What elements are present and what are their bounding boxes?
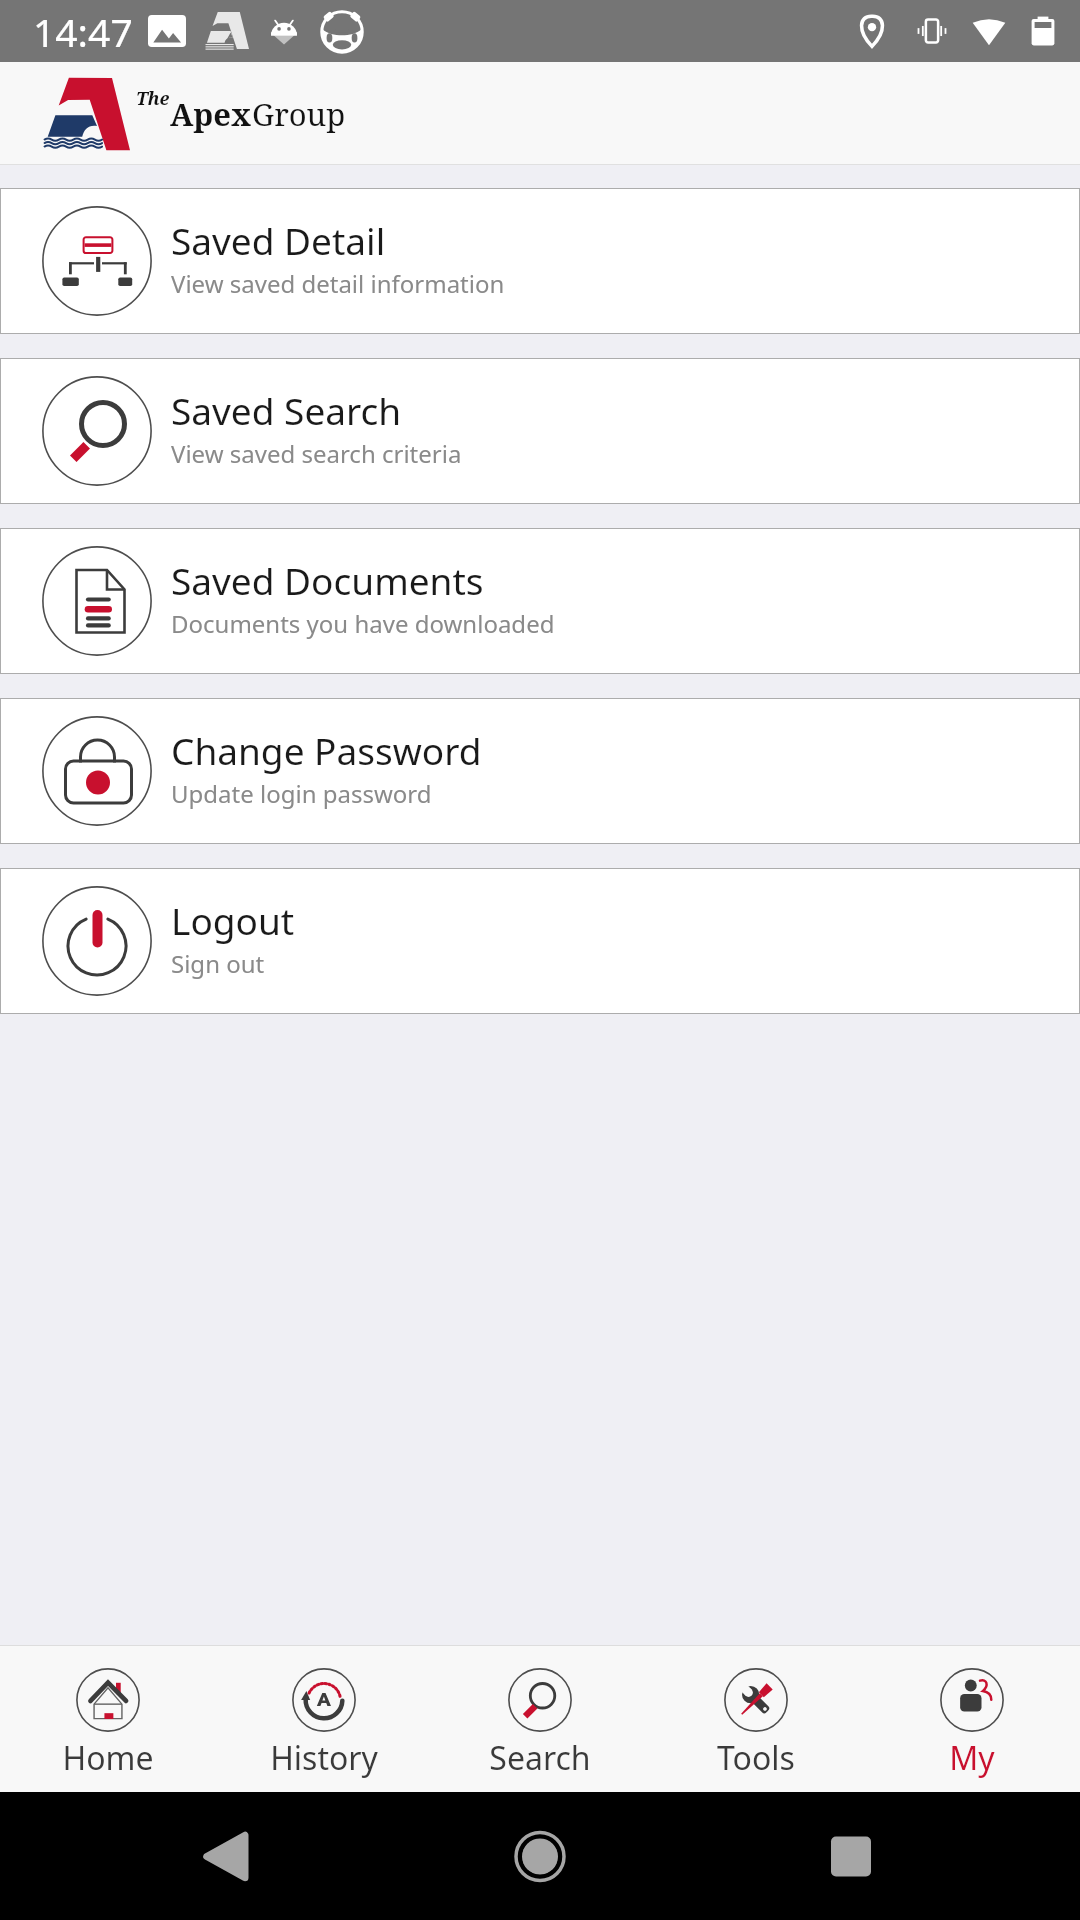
staticText: Saved Search: [171, 385, 402, 435]
button[interactable]: Change Password: [1, 699, 1079, 843]
staticText: Search: [489, 1736, 591, 1780]
staticText: Home: [62, 1736, 154, 1780]
button[interactable]: Saved Documents: [1, 529, 1079, 673]
staticText: Tools: [717, 1736, 795, 1780]
button[interactable]: Logout: [1, 869, 1079, 1013]
staticText: Saved Documents: [171, 555, 484, 605]
staticText: History: [270, 1736, 378, 1780]
button[interactable]: Saved Detail: [1, 189, 1079, 333]
staticText: Logout: [171, 895, 295, 945]
staticText: View saved search criteria: [171, 437, 462, 470]
staticText: View saved detail information: [171, 267, 505, 300]
staticText: Group: [252, 93, 346, 135]
staticText: Sign out: [171, 947, 265, 980]
staticText: My: [949, 1736, 995, 1780]
staticText: Update login password: [171, 777, 432, 810]
staticText: Change Password: [171, 725, 482, 775]
staticText: Apex: [170, 93, 252, 135]
button[interactable]: My: [864, 1646, 1080, 1792]
button[interactable]: Tools: [648, 1646, 864, 1792]
button[interactable]: History: [216, 1646, 432, 1792]
staticText: 14:47: [33, 5, 133, 58]
button[interactable]: Saved Search: [1, 359, 1079, 503]
staticText: The: [136, 86, 170, 111]
button[interactable]: Home: [0, 1646, 216, 1792]
staticText: Saved Detail: [171, 215, 386, 265]
staticText: Documents you have downloaded: [171, 607, 555, 640]
button[interactable]: Search: [432, 1646, 648, 1792]
